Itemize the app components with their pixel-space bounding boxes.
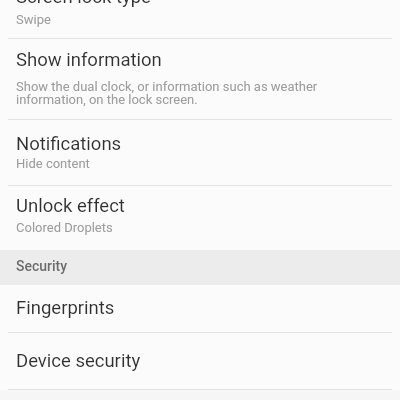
button[interactable]: Device security <box>0 333 400 389</box>
staticText: information, on the lock screen. <box>16 92 198 107</box>
staticText: Colored Droplets <box>16 220 113 235</box>
staticText: Fingerprints <box>16 297 115 319</box>
staticText: Unlock effect <box>16 195 125 217</box>
staticText: Screen lock type <box>16 0 151 8</box>
staticText: Security <box>16 258 68 274</box>
button[interactable]: Unlock effect <box>0 186 400 250</box>
button[interactable]: Screen lock type <box>0 0 400 38</box>
staticText: Show the dual clock, or information such… <box>16 79 318 94</box>
staticText: Device security <box>16 350 141 372</box>
staticText: Hide content <box>16 156 90 171</box>
button[interactable]: Fingerprints <box>0 286 400 332</box>
button[interactable]: Show information <box>0 39 400 119</box>
button[interactable]: Notifications <box>0 120 400 185</box>
staticText: Swipe <box>16 12 51 27</box>
staticText: Show information <box>16 49 162 71</box>
staticText: Notifications <box>16 133 122 155</box>
